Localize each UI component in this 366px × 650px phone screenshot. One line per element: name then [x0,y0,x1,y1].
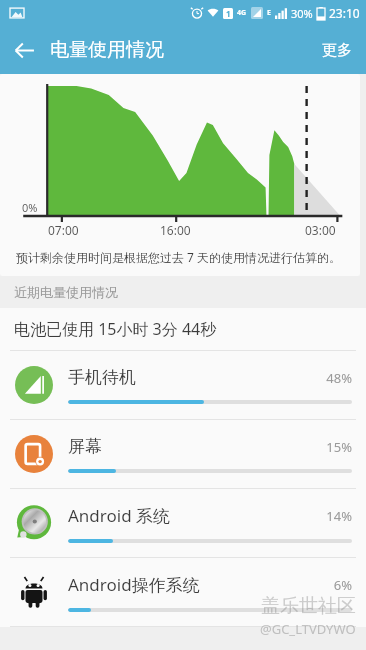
staticText: 4G [237,8,247,18]
staticText: 15% [326,438,352,456]
button[interactable]: Android 系统 [0,489,366,557]
button[interactable]: 更多 [322,41,352,60]
staticText: @GC_LTVDYWO [260,620,356,638]
staticText: 16:00 [160,222,191,238]
staticText: 03:00 [305,222,336,238]
button[interactable]: 屏幕 [0,420,366,488]
staticText: 手机待机 [68,367,326,388]
staticText: 屏幕 [68,436,326,457]
staticText: 6% [333,576,352,594]
staticText: E [267,8,271,18]
button[interactable]: Back [0,26,48,74]
staticText: 1 [226,8,231,19]
staticText: Android 系统 [68,504,326,527]
staticText: 30% [291,6,313,21]
staticText: 盖乐世社区 [261,594,356,618]
staticText: Android操作系统 [68,573,333,596]
staticText: 近期电量使用情况 [14,284,118,300]
staticText: 0% [22,200,38,215]
staticText: 48% [326,369,352,387]
staticText: 07:00 [48,222,79,238]
button[interactable]: 手机待机 [0,351,366,419]
staticText: 电池已使用 15小时 3分 44秒 [14,318,217,340]
staticText: 电量使用情况 [50,38,164,62]
staticText: 23:10 [329,5,360,21]
button[interactable]: Android操作系统 [0,558,366,626]
staticText: 14% [326,507,352,525]
staticText: 更多 [322,41,352,60]
staticText: 预计剩余使用时间是根据您过去 7 天的使用情况进行估算的。 [16,249,342,265]
